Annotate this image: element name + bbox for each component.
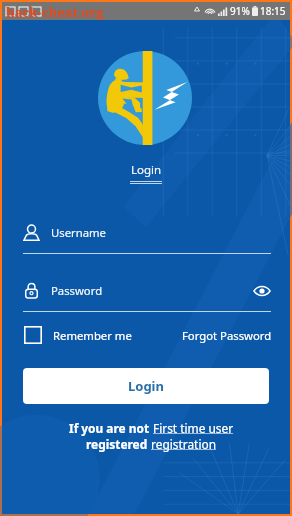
staticText: hack-cheat.org: [6, 3, 104, 21]
staticText: Login: [128, 377, 164, 395]
staticText: Forgot Password: [182, 328, 272, 343]
staticText: Password: [51, 283, 103, 298]
button[interactable]: Login: [23, 368, 269, 404]
button[interactable]: First time user: [153, 420, 234, 436]
staticText: 91%: [230, 4, 250, 18]
button[interactable]: registration: [151, 436, 216, 452]
button[interactable]: Forgot Password: [182, 325, 272, 346]
button[interactable]: Login: [2, 162, 290, 184]
button[interactable]: Password: [23, 281, 271, 312]
button[interactable]: Show password: [253, 282, 271, 300]
staticText: If you are not: [69, 420, 153, 436]
button[interactable]: Remember me: [24, 324, 132, 346]
button[interactable]: Username: [23, 223, 271, 254]
staticText: registered: [86, 436, 151, 452]
staticText: Login: [131, 162, 162, 178]
staticText: 18:15: [260, 4, 286, 18]
staticText: Remember me: [53, 328, 132, 343]
staticText: Username: [51, 225, 106, 240]
